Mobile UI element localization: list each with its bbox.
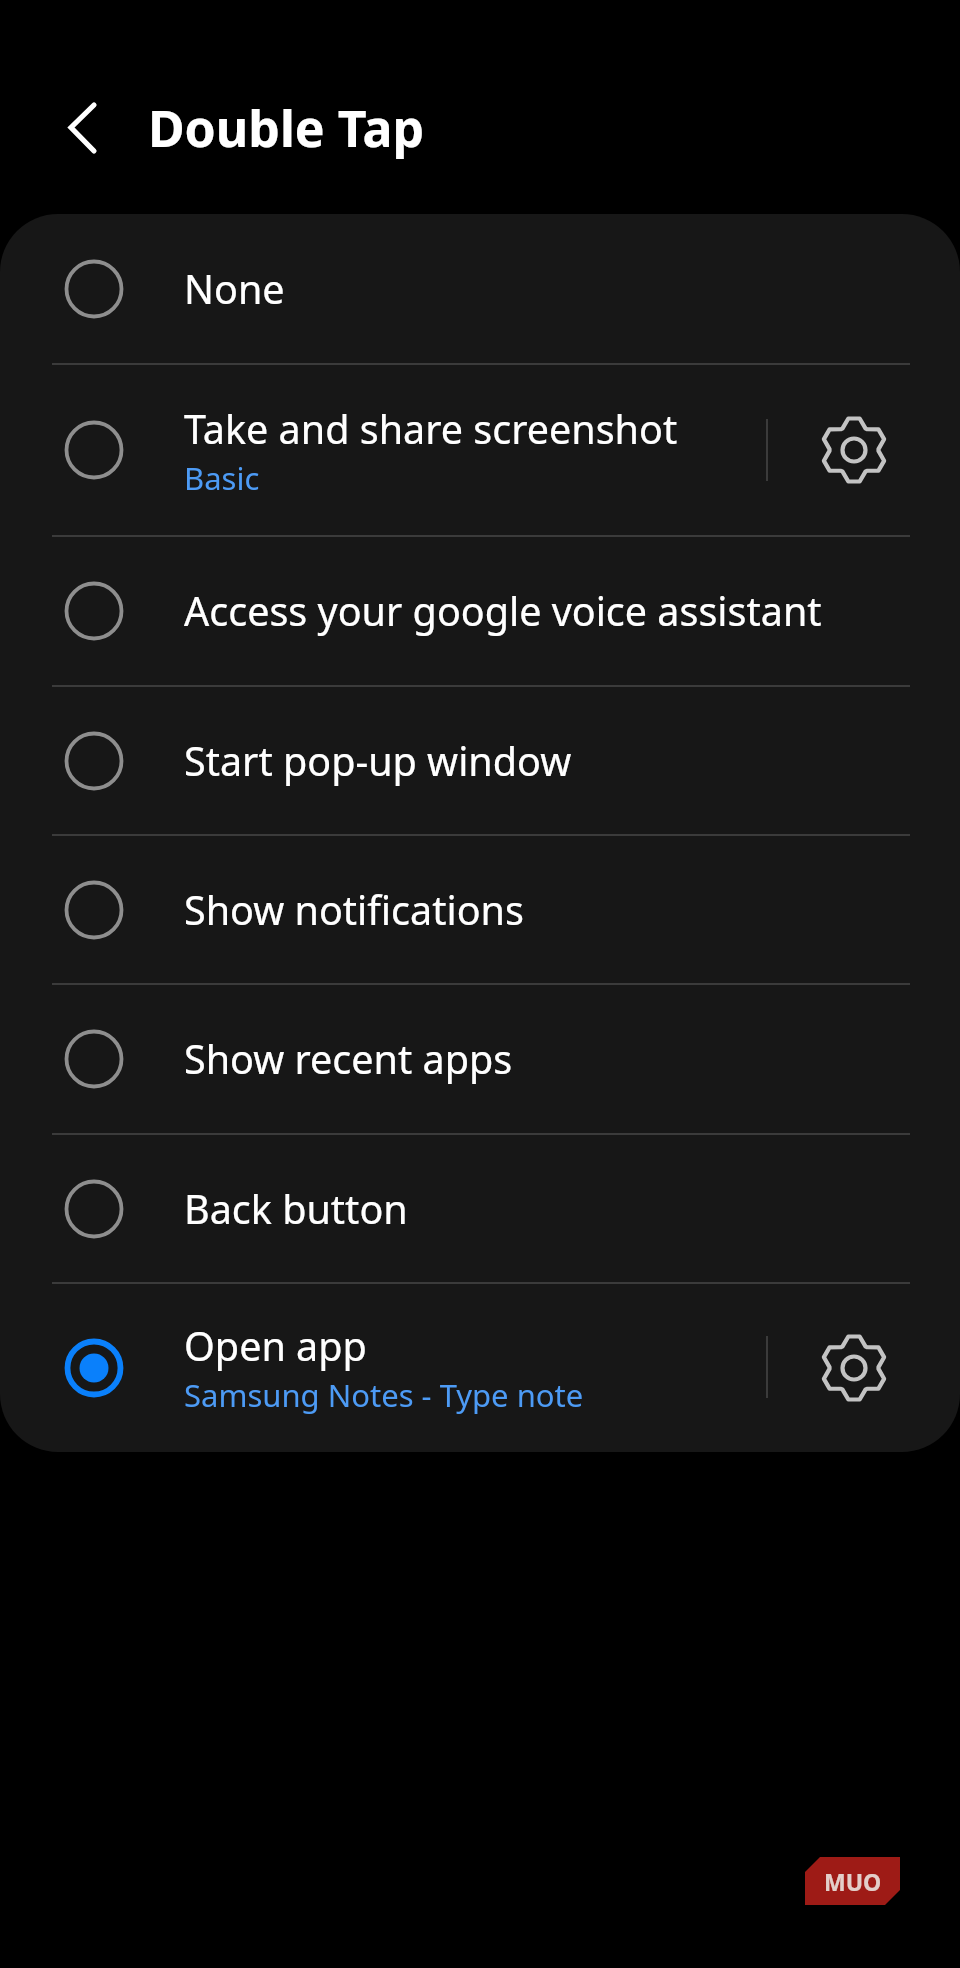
staticText: Show notifications [184,883,524,937]
staticText: Show recent apps [184,1032,513,1086]
staticText: None [184,262,285,316]
staticText: MUO [824,1866,882,1897]
button[interactable]: Access your google voice assistant [0,536,960,686]
button[interactable]: None [0,214,960,364]
staticText: Basic [184,457,260,499]
staticText: Access your google voice assistant [184,584,822,638]
staticText: Take and share screenshot [184,402,678,456]
button[interactable]: Start pop-up window [0,686,960,835]
button[interactable]: Take and share screenshot [0,364,960,536]
button[interactable]: Settings [769,364,939,536]
staticText: Samsung Notes - Type note [184,1374,584,1416]
staticText: Open app [184,1319,367,1373]
button[interactable]: Show recent apps [0,984,960,1134]
button[interactable]: Open app [0,1283,960,1452]
button[interactable]: Settings [769,1283,939,1452]
button[interactable]: Show notifications [0,835,960,984]
staticText: Back button [184,1182,408,1236]
button[interactable]: Back button [0,1134,960,1283]
staticText: Double Tap [148,94,425,162]
button[interactable]: Back [44,100,104,160]
staticText: Start pop-up window [184,734,572,788]
